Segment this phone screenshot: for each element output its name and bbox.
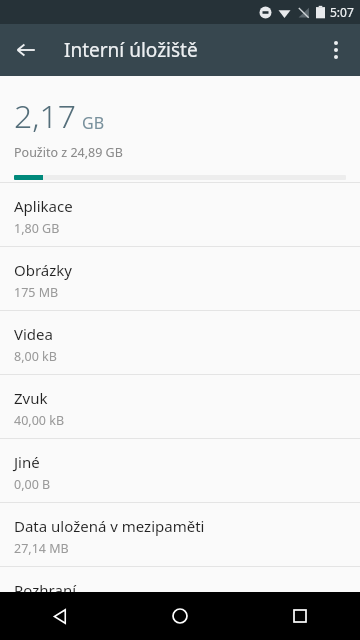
- staticText: Jiné: [14, 452, 40, 472]
- button[interactable]: Aplikace: [0, 183, 360, 246]
- staticText: Data uložená v mezipaměti: [14, 516, 205, 536]
- staticText: 2,17: [14, 94, 77, 138]
- button[interactable]: Recent apps: [240, 592, 360, 640]
- staticText: 40,00 kB: [14, 412, 65, 429]
- button[interactable]: Jiné: [0, 439, 360, 502]
- button[interactable]: Videa: [0, 311, 360, 374]
- staticText: Interní úložiště: [64, 37, 198, 63]
- staticText: 0,00 B: [14, 476, 51, 493]
- button[interactable]: Rozhraní ...: [0, 567, 360, 592]
- button[interactable]: Obrázky: [0, 247, 360, 310]
- staticText: GB: [82, 112, 105, 134]
- staticText: 1,80 GB: [14, 220, 60, 237]
- staticText: Rozhraní ...: [14, 580, 92, 592]
- staticText: Videa: [14, 324, 53, 344]
- staticText: Zvuk: [14, 388, 48, 408]
- staticText: Obrázky: [14, 260, 72, 280]
- staticText: 175 MB: [14, 284, 59, 301]
- staticText: Aplikace: [14, 196, 73, 216]
- button[interactable]: Back: [4, 28, 48, 72]
- staticText: 8,00 kB: [14, 348, 57, 365]
- button[interactable]: Back: [0, 592, 120, 640]
- button[interactable]: Home: [120, 592, 240, 640]
- button[interactable]: Zvuk: [0, 375, 360, 438]
- button[interactable]: Data uložená v mezipaměti: [0, 503, 360, 566]
- staticText: 27,14 MB: [14, 540, 69, 557]
- button[interactable]: More options: [314, 28, 358, 72]
- staticText: Použito z 24,89 GB: [14, 144, 123, 161]
- staticText: 5:07: [330, 4, 354, 20]
